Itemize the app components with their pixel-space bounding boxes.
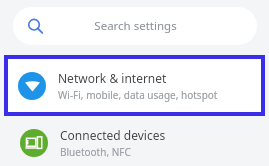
button[interactable]: Network & internet xyxy=(8,59,261,112)
staticText: Search settings xyxy=(94,18,177,34)
button[interactable]: Search xyxy=(13,7,257,45)
staticText: Network & internet xyxy=(58,70,167,86)
other: Search xyxy=(27,18,43,34)
staticText: Bluetooth, NFC xyxy=(60,145,131,159)
staticText: Connected devices xyxy=(60,127,166,143)
button[interactable]: Connected devices xyxy=(0,120,269,166)
staticText: Wi-Fi, mobile, data usage, hotspot xyxy=(58,88,218,102)
